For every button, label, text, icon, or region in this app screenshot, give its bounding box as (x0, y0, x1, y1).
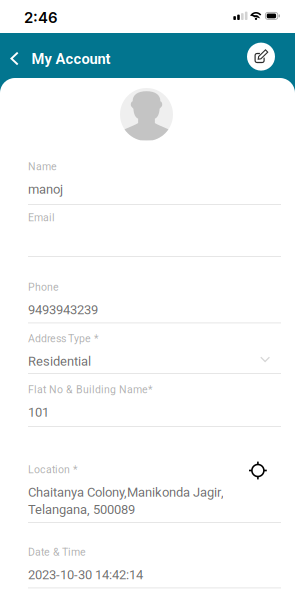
staticText: manoj (28, 182, 63, 197)
button[interactable]: Flat No & Building Name* (28, 384, 281, 427)
button[interactable]: Email (28, 211, 281, 257)
button[interactable]: Date & Time (28, 546, 281, 588)
button[interactable]: Edit (247, 43, 275, 71)
staticText: Name (28, 161, 57, 173)
staticText: My Account (31, 50, 110, 68)
button[interactable]: Back (3, 44, 26, 73)
staticText: Flat No & Building Name* (28, 384, 153, 396)
button[interactable]: Use current location (244, 457, 272, 484)
staticText: Chaitanya Colony,Manikonda Jagir, (28, 485, 224, 500)
staticText: Residential (28, 354, 91, 369)
staticText: Email (28, 211, 55, 224)
button[interactable]: Phone (28, 281, 281, 323)
button[interactable]: Location * (28, 464, 281, 523)
button[interactable]: Name (28, 161, 281, 205)
staticText: Telangana, 500089 (28, 502, 135, 517)
staticText: Phone (28, 281, 59, 293)
staticText: 101 (28, 405, 49, 420)
staticText: Date & Time (28, 546, 86, 558)
staticText: 9493943239 (28, 302, 98, 317)
staticText: Location * (28, 464, 78, 476)
staticText: Address Type * (28, 333, 99, 345)
button[interactable]: Address Type * (28, 333, 281, 374)
staticText: 2:46 (24, 8, 58, 27)
staticText: 2023-10-30 14:42:14 (28, 567, 143, 582)
